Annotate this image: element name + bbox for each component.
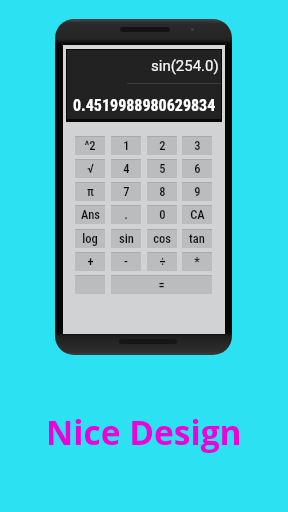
button[interactable]: = [111,275,212,294]
staticText: 3 [194,138,201,153]
staticText: + [87,254,94,269]
button[interactable]: 7 [111,182,141,201]
staticText: 2 [159,138,166,153]
button[interactable]: . [111,205,141,224]
staticText: 1 [123,138,130,153]
staticText: 7 [123,184,130,199]
staticText: Nice Design [46,409,242,455]
staticText: ^2 [84,138,96,153]
button[interactable]: CA [182,205,212,224]
button[interactable]: Ans [75,205,105,224]
staticText: Ans [81,207,100,222]
button[interactable]: sin [111,229,141,248]
button[interactable]: 0 [147,205,177,224]
button[interactable]: + [75,252,105,271]
staticText: tan [189,231,205,246]
button[interactable]: 5 [147,159,177,178]
button[interactable]: 3 [182,136,212,155]
button[interactable]: * [182,252,212,271]
staticText: ÷ [159,254,166,269]
button[interactable]: 1 [111,136,141,155]
staticText: 4 [123,161,130,176]
staticText: - [124,254,128,269]
staticText: . [124,207,128,222]
button[interactable]: 4 [111,159,141,178]
staticText: 9 [194,184,201,199]
staticText: √ [87,161,94,176]
staticText: sin(254.0) [151,57,219,75]
staticText: 0.4519988980629834 [73,96,216,115]
staticText: sin [119,231,134,246]
button[interactable]: √ [75,159,105,178]
button[interactable]: ÷ [147,252,177,271]
button[interactable]: tan [182,229,212,248]
staticText: 8 [159,184,166,199]
button[interactable]: cos [147,229,177,248]
staticText: 0 [159,207,166,222]
button[interactable]: 2 [147,136,177,155]
staticText: * [194,254,200,269]
button[interactable]: ^2 [75,136,105,155]
button[interactable]: - [111,252,141,271]
button[interactable]: 8 [147,182,177,201]
button[interactable]: 6 [182,159,212,178]
staticText: = [158,277,165,292]
button[interactable]: π [75,182,105,201]
button[interactable]: log [75,229,105,248]
button[interactable]: 9 [182,182,212,201]
staticText: CA [190,207,205,222]
staticText: log [82,231,98,246]
staticText: 6 [194,161,201,176]
staticText: cos [153,231,171,246]
staticText: 5 [159,161,166,176]
staticText: π [87,184,94,199]
button[interactable]: blank key [75,275,105,294]
